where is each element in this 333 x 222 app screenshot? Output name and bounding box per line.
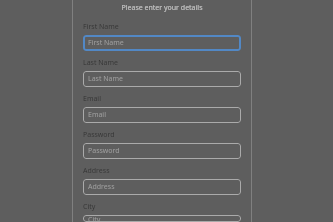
staticText: Last Name (83, 58, 119, 68)
button[interactable]: Last Name (83, 71, 241, 87)
staticText: City (88, 215, 101, 222)
button[interactable]: First Name (83, 35, 241, 51)
staticText: City (83, 202, 96, 212)
staticText: Last Name (88, 74, 124, 84)
button[interactable]: Address (83, 179, 241, 195)
button[interactable]: City (83, 215, 241, 222)
staticText: Address (83, 166, 110, 176)
button[interactable]: Password (83, 143, 241, 159)
staticText: Email (88, 110, 106, 120)
staticText: First Name (88, 38, 124, 48)
button[interactable]: Email (83, 107, 241, 123)
staticText: Email (83, 94, 101, 104)
staticText: Address (88, 182, 115, 192)
staticText: Password (88, 146, 120, 156)
staticText: First Name (83, 22, 119, 32)
staticText: Please enter your details (73, 3, 251, 13)
staticText: Password (83, 130, 115, 140)
